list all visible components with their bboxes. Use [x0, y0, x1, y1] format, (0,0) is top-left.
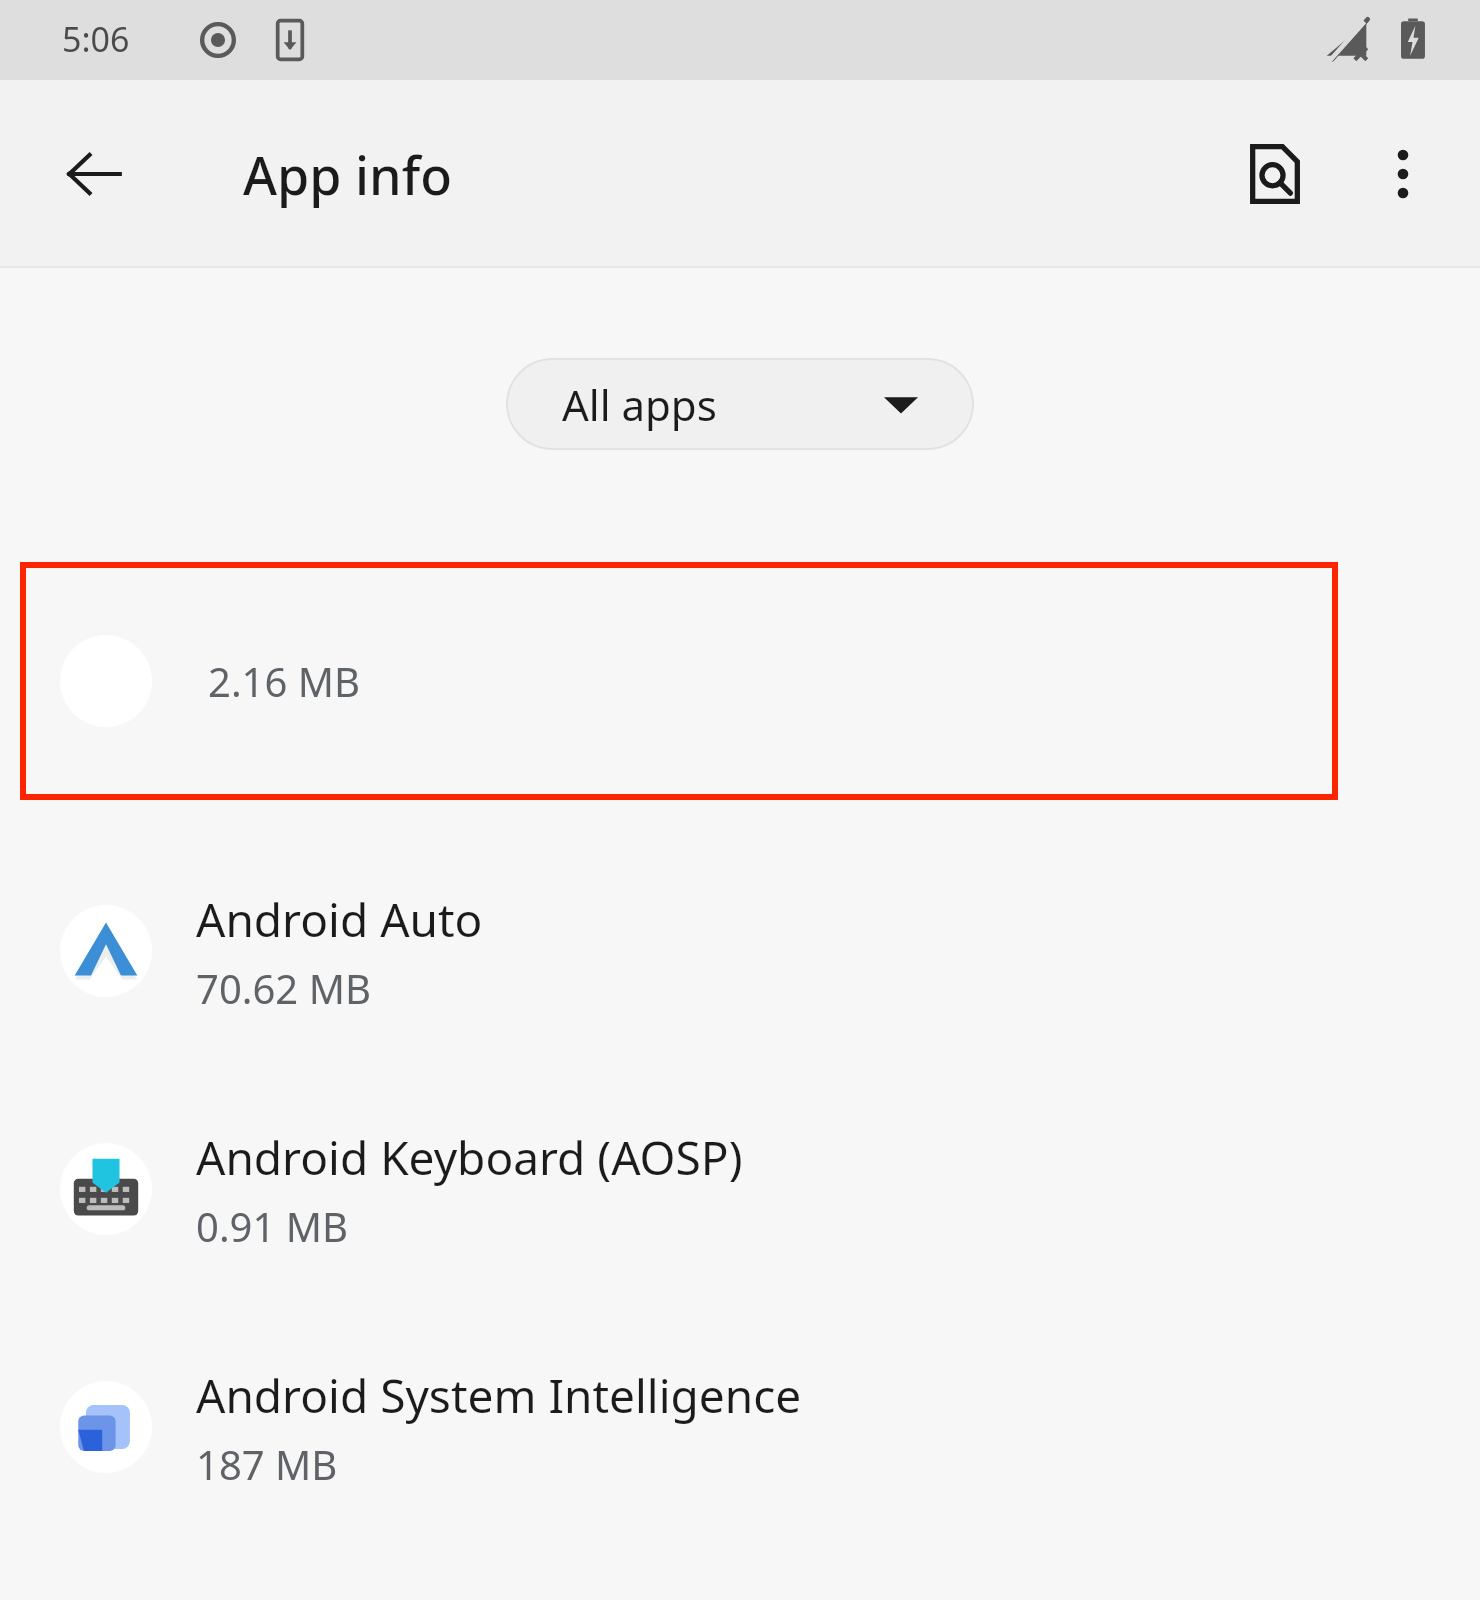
- button[interactable]: Android Auto: [0, 858, 1480, 1044]
- staticText: 187 MB: [196, 1437, 338, 1491]
- staticText: 0.91 MB: [196, 1199, 349, 1253]
- staticText: All apps: [562, 376, 717, 433]
- button[interactable]: More options: [1348, 119, 1458, 229]
- button[interactable]: Android System Intelligence: [0, 1334, 1480, 1520]
- staticText: 70.62 MB: [196, 961, 371, 1015]
- button[interactable]: All apps: [506, 358, 974, 450]
- button[interactable]: Android Keyboard (AOSP): [0, 1096, 1480, 1282]
- staticText: 5:06: [62, 16, 130, 62]
- staticText: 2.16 MB: [208, 654, 361, 708]
- button[interactable]: Search in page: [1220, 119, 1330, 229]
- button[interactable]: 2.16 MB: [20, 562, 1338, 800]
- staticText: Android Auto: [196, 888, 483, 951]
- staticText: App info: [243, 139, 453, 210]
- staticText: Android System Intelligence: [196, 1364, 802, 1427]
- button[interactable]: Back: [34, 114, 154, 234]
- staticText: Android Keyboard (AOSP): [196, 1126, 743, 1189]
